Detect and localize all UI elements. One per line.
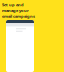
- staticText: Set up and: [2, 2, 24, 7]
- staticText: email campaigns: [2, 13, 35, 19]
- staticText: manage your: [2, 8, 29, 13]
